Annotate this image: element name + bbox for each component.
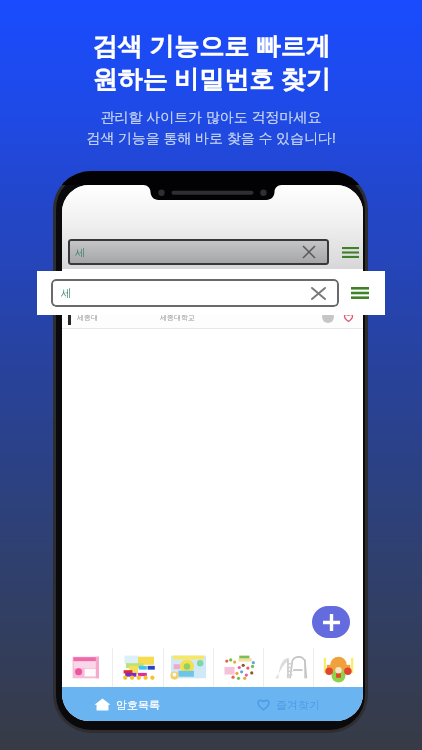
staticText: 관리할 사이트가 많아도 걱정마세요 검색 기능을 통해 바로 찾을 수 있습니… [86,107,336,148]
button[interactable]: Menu [348,281,372,305]
staticText: 세종대학교 [160,313,195,322]
staticText: 암호목록 [116,698,160,712]
staticText: 검색 기능으로 빠르게 원하는 비밀번호 찾기 [92,28,331,96]
button[interactable] [264,648,313,687]
button[interactable]: Menu [338,240,362,264]
button[interactable] [62,648,112,687]
button[interactable]: Add [312,606,350,638]
button[interactable]: 세 [51,279,339,307]
staticText: 즐겨찾기 [276,698,320,712]
button[interactable] [164,648,213,687]
button[interactable]: 세 [68,239,329,265]
button[interactable] [214,648,263,687]
button[interactable]: Clear [303,246,315,258]
staticText: 세 [75,246,85,259]
staticText: 세종대 [77,313,98,322]
staticText: 세 [61,286,72,300]
button[interactable]: 즐겨찾기 [212,687,363,721]
button[interactable] [314,648,363,687]
button[interactable]: Clear [312,288,325,299]
button[interactable] [113,648,163,687]
button[interactable]: 암호목록 [62,687,212,721]
button[interactable]: 세종대 [68,306,357,328]
